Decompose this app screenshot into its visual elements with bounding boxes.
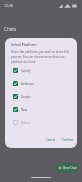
- button[interactable]: Nest: [5, 103, 77, 116]
- staticText: Chats: [4, 26, 17, 32]
- button[interactable]: New Chat: [56, 163, 78, 173]
- button[interactable]: Spotify: [5, 64, 77, 77]
- button[interactable]: Google: [5, 90, 77, 103]
- button[interactable]: Cancel: [44, 137, 58, 143]
- button[interactable]: Anthropic: [5, 77, 77, 90]
- staticText: Anthropic: [21, 82, 35, 86]
- staticText: Nest: [21, 108, 28, 112]
- button[interactable]: Confirm: [60, 137, 76, 143]
- staticText: Select Platform: [11, 42, 37, 47]
- staticText: Cancel: [46, 138, 56, 142]
- staticText: Select the platforms you want to share t…: [11, 50, 73, 64]
- button[interactable]: Others: [5, 116, 77, 129]
- staticText: Others: [21, 121, 31, 125]
- staticText: New Chat: [63, 166, 77, 170]
- staticText: Confirm: [62, 138, 74, 142]
- staticText: Google: [21, 95, 31, 99]
- staticText: Spotify: [21, 69, 31, 73]
- staticText: 12:30: [4, 3, 13, 8]
